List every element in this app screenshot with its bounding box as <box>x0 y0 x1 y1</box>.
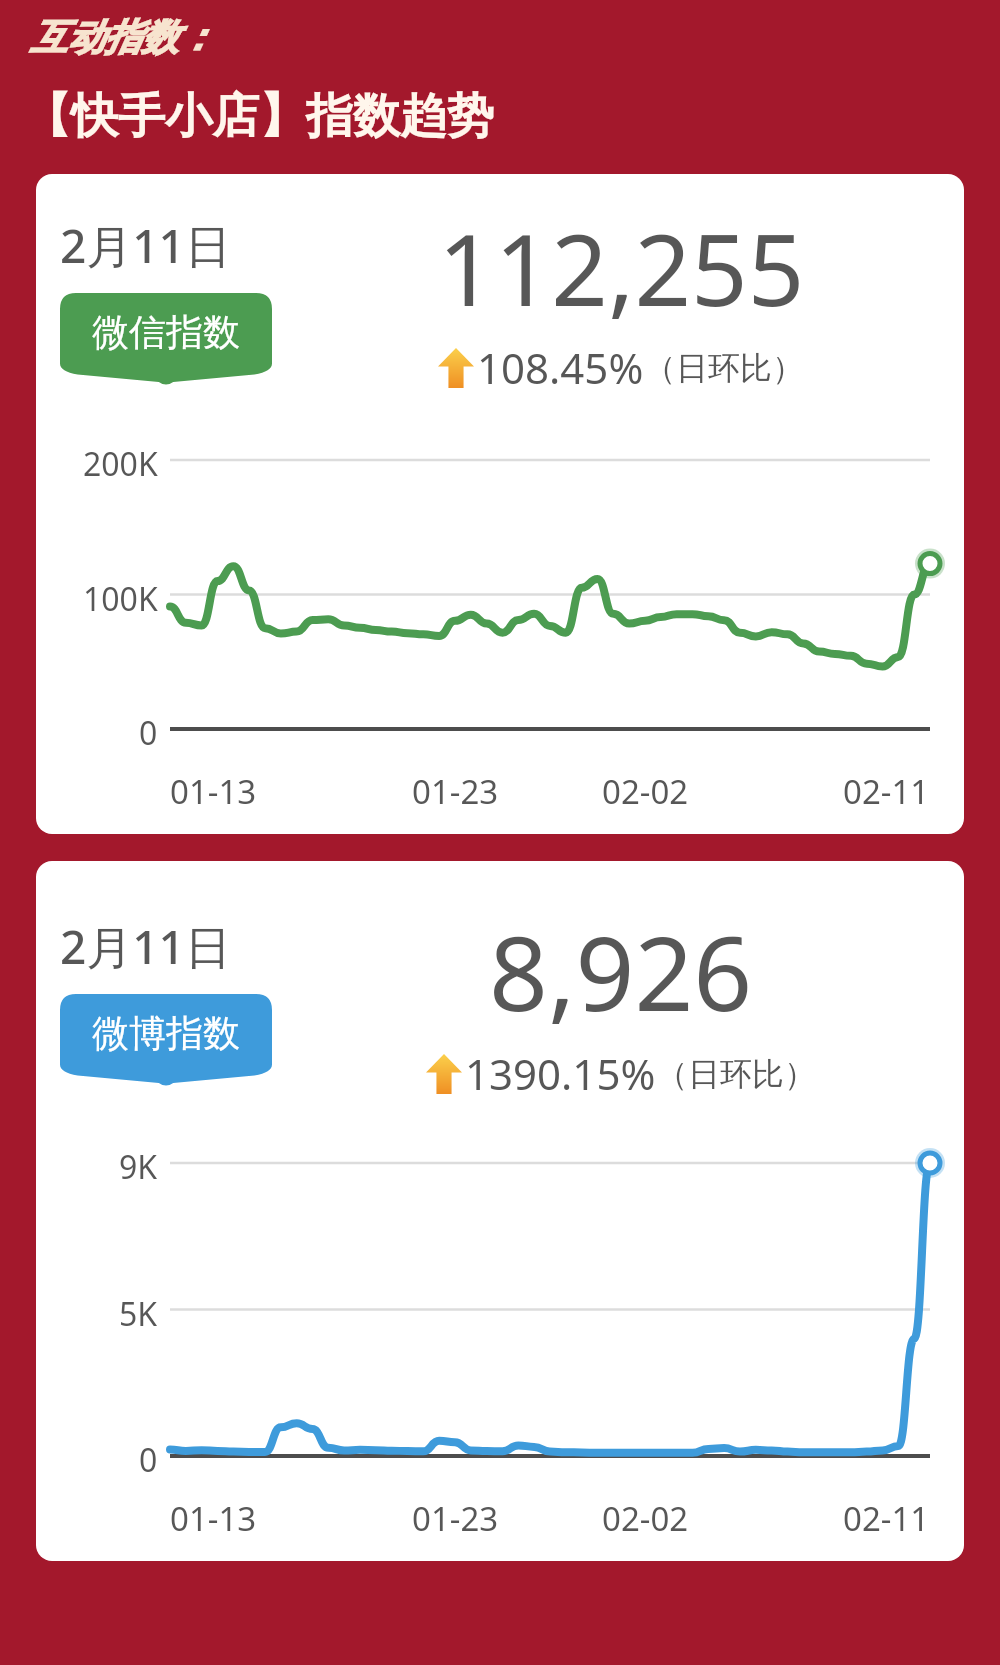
staticText: 2月11日 <box>60 915 231 978</box>
staticText: 200K <box>83 442 158 478</box>
staticText: 02-02 <box>602 1496 689 1541</box>
staticText: 9K <box>119 1145 158 1181</box>
other: Increase <box>438 348 474 388</box>
staticText: 02-11 <box>843 769 930 814</box>
button[interactable]: 2月11日 <box>36 174 964 834</box>
other: Increase <box>426 1054 462 1094</box>
staticText: 1390.15% <box>465 1045 656 1102</box>
staticText: （日环比） <box>656 1054 816 1094</box>
staticText: 互动指数： <box>30 14 215 61</box>
staticText: 8,926 <box>489 901 753 1041</box>
staticText: 108.45% <box>477 339 644 396</box>
button[interactable]: 微信指数 <box>60 293 272 385</box>
staticText: 01-23 <box>412 1496 499 1541</box>
button[interactable]: 2月11日 <box>36 861 964 1561</box>
staticText: 02-11 <box>843 1496 930 1541</box>
staticText: 112,255 <box>438 200 805 335</box>
staticText: 0 <box>139 1438 158 1474</box>
staticText: 01-13 <box>170 1496 257 1541</box>
staticText: 100K <box>83 577 158 613</box>
staticText: 2月11日 <box>60 214 231 277</box>
staticText: 微信指数 <box>92 309 240 356</box>
staticText: 02-02 <box>602 769 689 814</box>
button[interactable]: 微博指数 <box>60 994 272 1086</box>
staticText: 【快手小店】指数趋势 <box>24 87 494 146</box>
staticText: 01-23 <box>412 769 499 814</box>
staticText: （日环比） <box>644 348 804 388</box>
staticText: 5K <box>119 1292 158 1328</box>
staticText: 0 <box>139 711 158 747</box>
staticText: 01-13 <box>170 769 257 814</box>
staticText: 微博指数 <box>92 1010 240 1057</box>
